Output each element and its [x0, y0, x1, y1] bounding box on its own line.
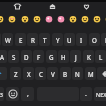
staticText: M	[88, 70, 94, 78]
button[interactable]: R	[27, 33, 38, 46]
button[interactable]: Favourites	[83, 3, 90, 10]
button[interactable]: O	[89, 33, 100, 46]
staticText: C	[39, 70, 43, 78]
button[interactable]: A	[0, 50, 7, 63]
staticText: A	[0, 53, 4, 61]
button[interactable]: Emoji	[80, 14, 90, 24]
staticText: G	[49, 53, 54, 61]
button[interactable]: T	[39, 33, 50, 46]
staticText: P	[105, 36, 106, 44]
button[interactable]: B	[60, 67, 71, 80]
button[interactable]: K	[83, 50, 94, 63]
button[interactable]: Emoji	[0, 14, 5, 24]
staticText: ?123	[0, 91, 3, 98]
button[interactable]: J	[70, 50, 81, 63]
button[interactable]: Emoji	[32, 14, 42, 24]
button[interactable]: Shift	[0, 67, 7, 80]
button[interactable]: ?123	[0, 87, 4, 101]
button[interactable]: E	[15, 33, 26, 46]
staticText: D	[24, 53, 29, 61]
staticText: W	[5, 36, 11, 44]
staticText: .	[85, 89, 87, 99]
staticText: S	[12, 53, 16, 61]
staticText: Y	[56, 36, 60, 44]
button[interactable]: S	[8, 50, 19, 63]
staticText: Z	[14, 70, 18, 78]
button[interactable]: Backspace	[97, 67, 106, 80]
button[interactable]: F	[33, 50, 44, 63]
staticText: L	[99, 53, 103, 61]
staticText: O	[92, 36, 97, 44]
button[interactable]: Emoji	[56, 14, 66, 24]
staticText: B	[63, 70, 68, 78]
button[interactable]: .	[80, 87, 92, 101]
staticText: I	[80, 36, 83, 44]
button[interactable]: Clothing	[14, 3, 21, 10]
staticText: K	[87, 53, 91, 61]
button[interactable]: Emoji	[6, 87, 19, 101]
button[interactable]: Z	[10, 67, 21, 80]
button[interactable]: I	[76, 33, 87, 46]
button[interactable]: M	[85, 67, 96, 80]
staticText: U	[67, 36, 72, 44]
staticText: NEXT	[96, 91, 106, 98]
button[interactable]: Emoji	[7, 14, 17, 24]
button[interactable]: Y	[52, 33, 63, 46]
button[interactable]: Q	[0, 33, 1, 46]
button[interactable]: X	[23, 67, 34, 80]
button[interactable]: NEXT	[94, 87, 106, 101]
staticText: H	[61, 53, 66, 61]
button[interactable]: G	[46, 50, 57, 63]
button[interactable]: W	[2, 33, 13, 46]
button[interactable]: N	[72, 67, 83, 80]
button[interactable]: D	[21, 50, 32, 63]
staticText: V	[51, 70, 55, 78]
staticText: N	[75, 70, 80, 78]
staticText: F	[37, 53, 41, 61]
staticText: R	[31, 36, 35, 44]
button[interactable]: Emoji	[92, 14, 102, 24]
button[interactable]: V	[47, 67, 58, 80]
staticText: E	[19, 36, 23, 44]
staticText: J	[75, 53, 77, 61]
button[interactable]: Emoji	[68, 14, 78, 24]
button[interactable]: Emoji	[104, 14, 106, 24]
button[interactable]: Places	[49, 3, 56, 10]
staticText: ,	[27, 89, 29, 99]
button[interactable]: P	[101, 33, 106, 46]
button[interactable]: Emoji	[20, 14, 30, 24]
staticText: T	[43, 36, 47, 44]
button[interactable]: U	[64, 33, 75, 46]
button[interactable]: C	[35, 67, 46, 80]
staticText: X	[27, 70, 31, 78]
button[interactable]: ,	[21, 87, 34, 101]
button[interactable]: Emoji	[44, 14, 54, 24]
button[interactable]: H	[58, 50, 69, 63]
button[interactable]: L	[95, 50, 106, 63]
